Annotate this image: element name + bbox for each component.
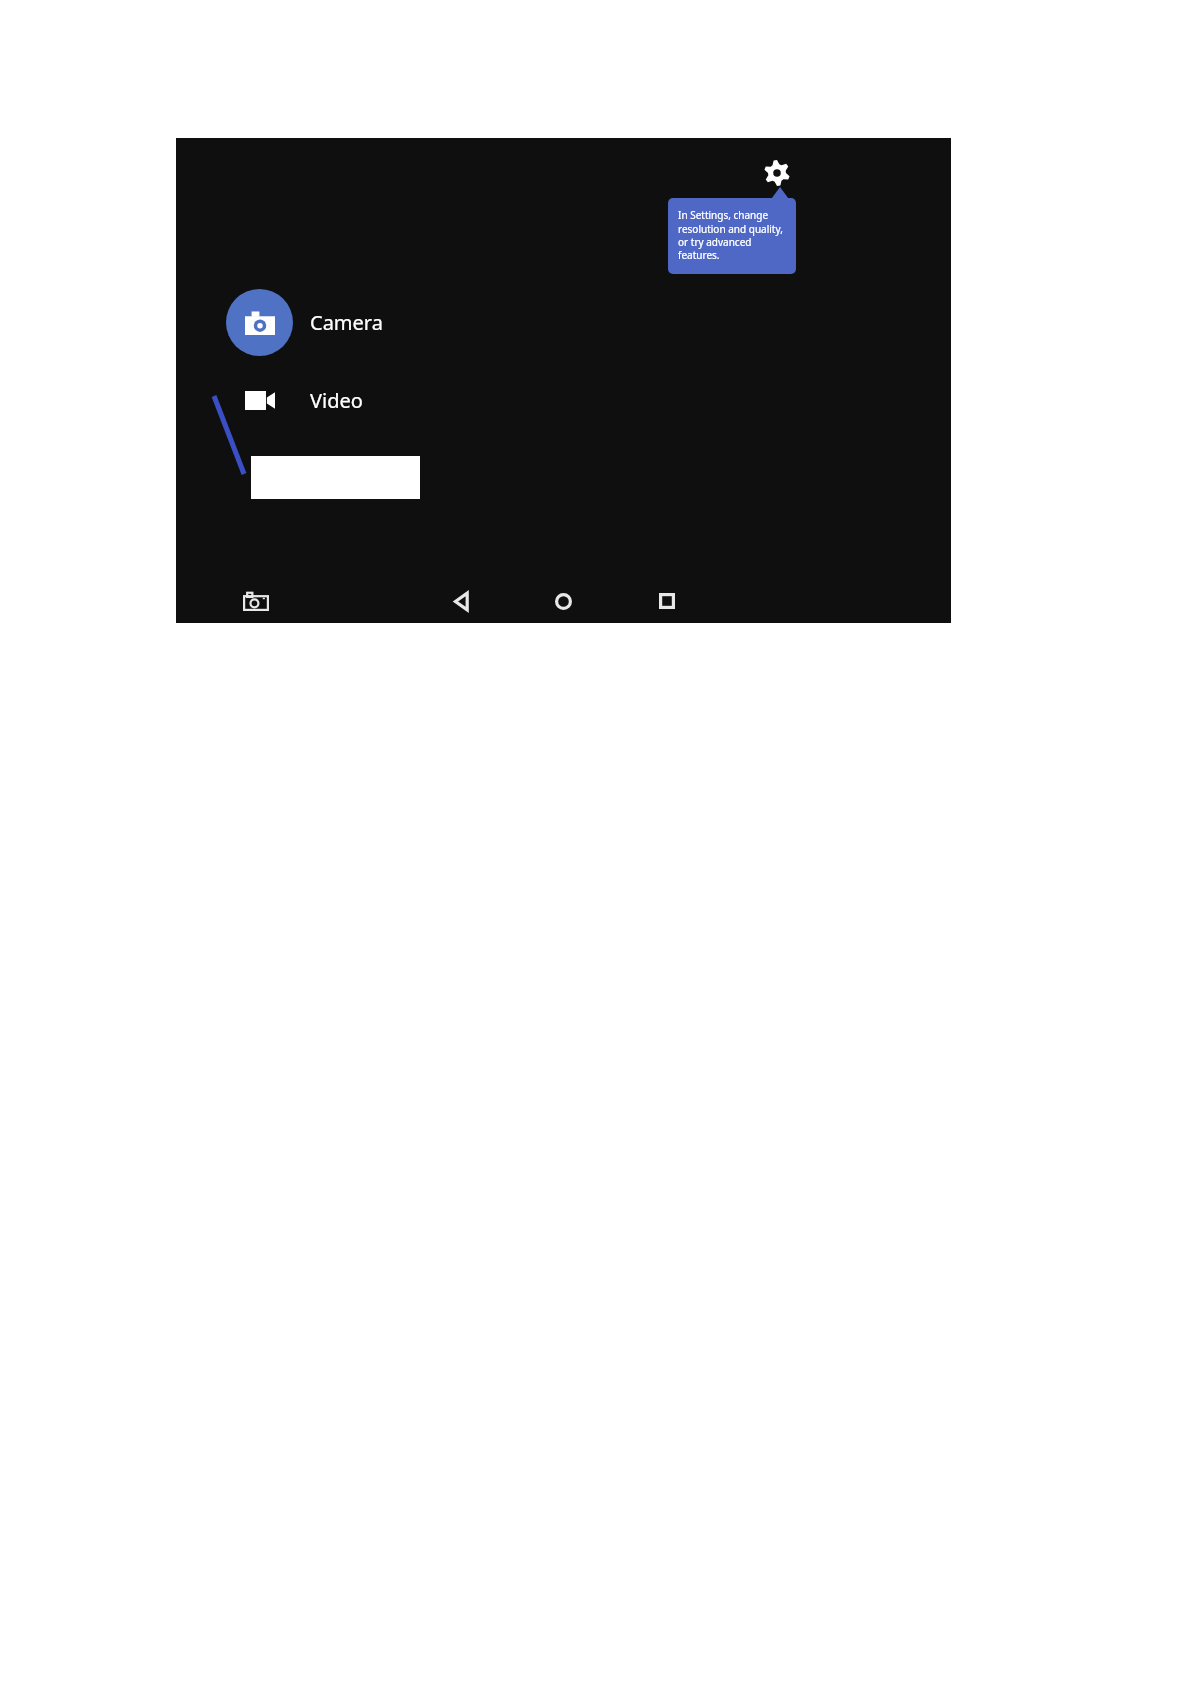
button[interactable]: In Settings, change resolution and quali…: [668, 187, 796, 263]
button[interactable]: Camera: [226, 289, 476, 356]
staticText: Video: [310, 387, 363, 414]
button[interactable]: Recent apps: [637, 579, 697, 623]
staticText: Camera: [310, 309, 383, 336]
button[interactable]: Video: [226, 378, 476, 422]
button[interactable]: Back: [431, 579, 491, 623]
button[interactable]: Camera shortcut: [226, 579, 286, 623]
staticText: In Settings, change resolution and quali…: [678, 208, 788, 262]
button[interactable]: Home: [533, 579, 593, 623]
button[interactable]: Settings: [754, 150, 800, 196]
